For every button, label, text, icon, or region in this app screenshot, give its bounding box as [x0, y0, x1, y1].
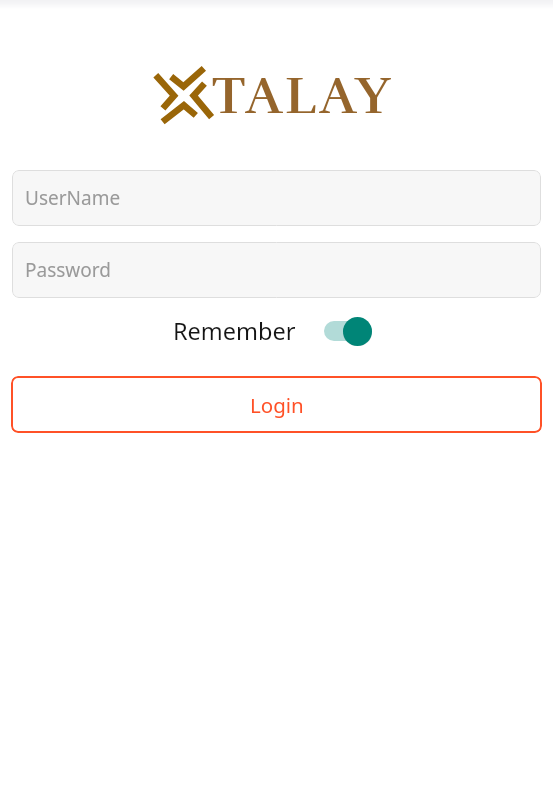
button[interactable]: UserName	[12, 170, 541, 226]
button[interactable]: Login	[11, 376, 542, 433]
staticText: Login	[250, 391, 304, 419]
staticText: Remember	[173, 315, 296, 347]
button[interactable]: Remember me toggle	[324, 316, 372, 346]
staticText: UserName	[25, 185, 121, 211]
button[interactable]: Password	[12, 242, 541, 298]
staticText: TALAY	[212, 64, 394, 124]
staticText: Password	[25, 257, 111, 283]
